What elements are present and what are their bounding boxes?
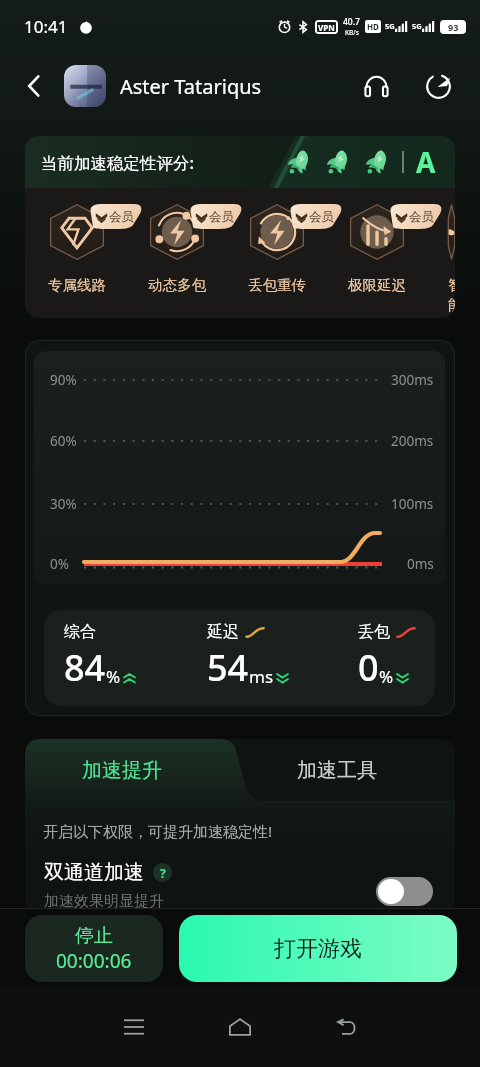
button[interactable]: Back [318, 999, 374, 1055]
button[interactable]: 专属线路 [48, 188, 106, 318]
staticText: 60% [50, 432, 77, 450]
staticText: % [106, 665, 121, 688]
staticText: HD [367, 21, 379, 32]
staticText: 54 [207, 643, 249, 692]
staticText: Aster Tatariqus [120, 73, 262, 100]
button[interactable]: Home [212, 999, 268, 1055]
staticText: 开启以下权限，可提升加速稳定性! [43, 821, 273, 841]
staticText: 会员 [409, 209, 434, 225]
button[interactable]: Toggle [376, 877, 433, 906]
staticText: 加速效果明显提升 [44, 892, 164, 911]
staticText: 93 [448, 21, 459, 33]
staticText: 会员 [109, 209, 134, 225]
button[interactable]: Recents [106, 999, 162, 1055]
staticText: 极限延迟 [348, 276, 406, 294]
button[interactable]: Back [14, 66, 54, 106]
button[interactable]: 动态多包 [148, 188, 206, 318]
staticText: 300ms [391, 371, 434, 389]
staticText: 会员 [309, 209, 334, 225]
staticText: 30% [50, 495, 77, 513]
staticText: KB/s [345, 28, 359, 37]
staticText: 专属线路 [48, 276, 106, 294]
staticText: 84 [64, 643, 106, 692]
staticText: 丢包 [358, 622, 390, 642]
staticText: 当前加速稳定性评分: [41, 151, 194, 174]
staticText: 加速提升 [82, 758, 162, 783]
button[interactable]: Headset [356, 66, 396, 106]
staticText: 0% [50, 555, 69, 573]
button[interactable]: 加速工具 [218, 739, 455, 801]
staticText: 5G [412, 21, 422, 31]
button[interactable]: Refresh [418, 66, 458, 106]
staticText: 会员 [209, 209, 234, 225]
staticText: 0ms [407, 555, 434, 573]
staticText: 加速工具 [297, 758, 377, 783]
staticText: 停止 [75, 924, 113, 948]
staticText: 丢包重传 [248, 276, 306, 294]
button[interactable]: 加速提升 [25, 739, 218, 801]
staticText: ? [160, 865, 166, 881]
staticText: 40.7 [343, 16, 360, 28]
staticText: 10:41 [24, 15, 68, 38]
button[interactable]: 丢包重传 [248, 188, 306, 318]
staticText: 90% [50, 371, 77, 389]
staticText: ms [249, 665, 274, 688]
button[interactable]: 智能 [448, 188, 455, 318]
staticText: 智能 [448, 276, 455, 314]
staticText: A [416, 143, 436, 181]
staticText: 00:00:06 [56, 948, 132, 974]
staticText: 100ms [391, 495, 434, 513]
staticText: VPN [318, 22, 335, 33]
staticText: 延迟 [207, 622, 239, 642]
staticText: % [379, 665, 394, 688]
staticText: 综合 [64, 622, 96, 642]
button[interactable]: Help [153, 863, 172, 882]
button[interactable]: 打开游戏 [179, 915, 457, 982]
staticText: 0 [358, 643, 379, 692]
staticText: 5G [385, 21, 395, 31]
staticText: 双通道加速 [44, 860, 144, 885]
button[interactable]: 极限延迟 [348, 188, 406, 318]
button[interactable]: 停止 [25, 915, 163, 982]
staticText: 200ms [391, 432, 434, 450]
staticText: 动态多包 [148, 276, 206, 294]
staticText: 打开游戏 [274, 935, 362, 963]
